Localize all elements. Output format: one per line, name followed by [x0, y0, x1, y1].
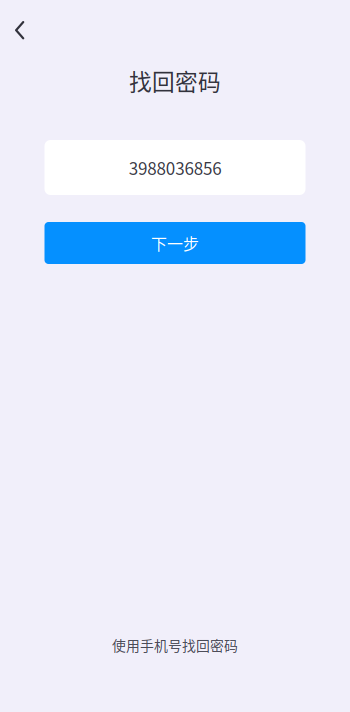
- staticText: 使用手机号找回密码: [112, 635, 238, 655]
- staticText: 3988036856: [129, 155, 221, 180]
- button[interactable]: Back: [0, 0, 50, 54]
- button[interactable]: 3988036856: [44, 140, 305, 195]
- staticText: 下一步: [151, 231, 199, 255]
- button[interactable]: 下一步: [44, 222, 305, 264]
- button[interactable]: 使用手机号找回密码: [0, 630, 350, 660]
- staticText: 找回密码: [129, 64, 221, 97]
